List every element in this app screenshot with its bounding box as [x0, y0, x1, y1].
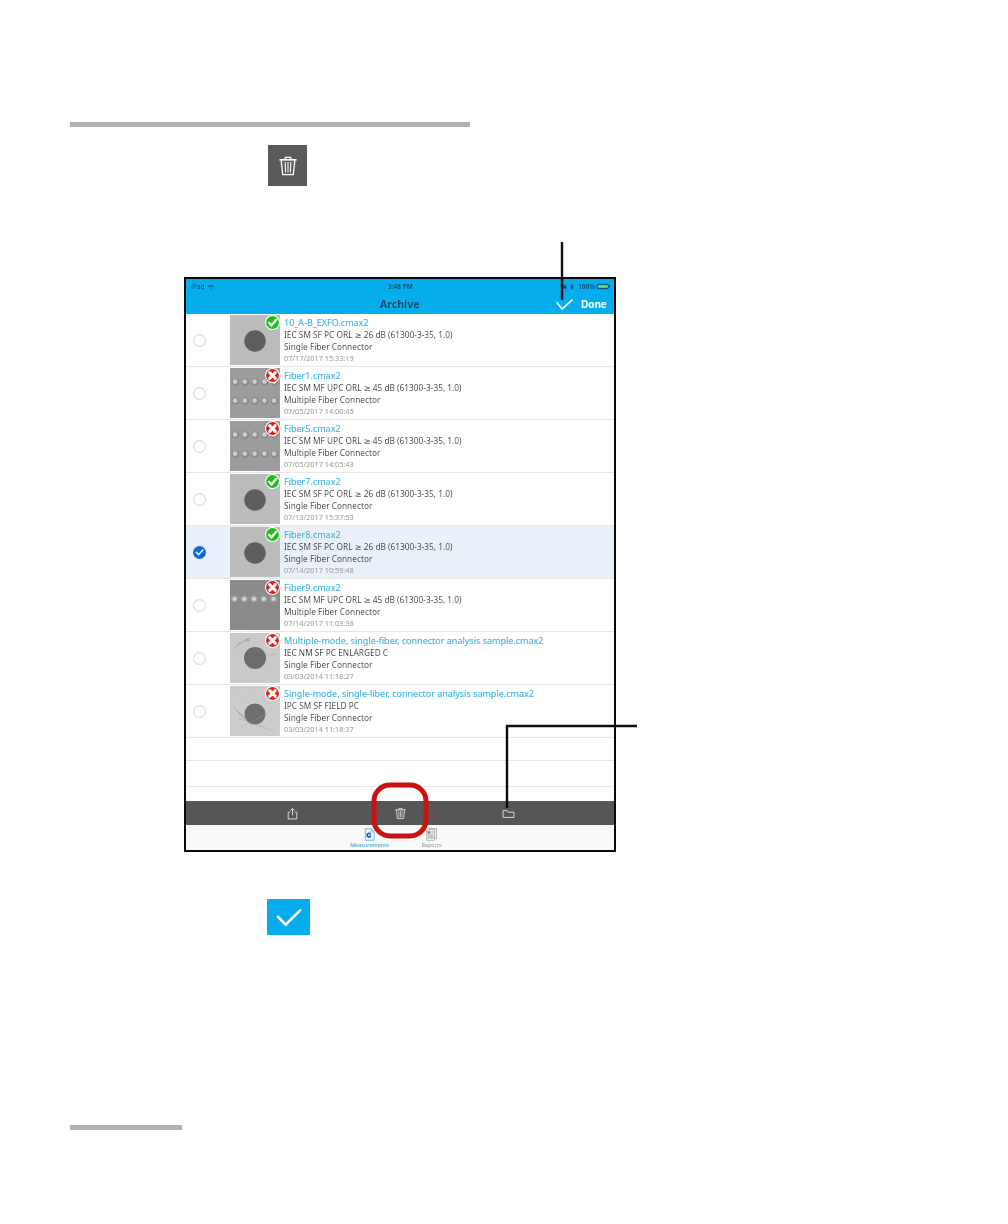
staticText: 07/14/2017 11:03:36: [284, 618, 354, 628]
staticText: 07/13/2017 15:37:53: [284, 512, 354, 522]
staticText: Multiple Fiber Connector: [284, 394, 381, 405]
button[interactable]: Delete: [385, 801, 415, 825]
staticText: IEC SM SF PC ORL ≥ 26 dB (61300-3-35, 1.…: [284, 329, 453, 340]
staticText: Single Fiber Connector: [284, 712, 373, 723]
staticText: Fiber1.cmax2: [284, 369, 341, 381]
staticText: Fiber5.cmax2: [284, 422, 341, 434]
button[interactable]: Fiber7.cmax2: [186, 473, 614, 525]
staticText: Multiple Fiber Connector: [284, 447, 381, 458]
staticText: iPad: [191, 282, 205, 291]
button[interactable]: Done: [579, 295, 609, 313]
button[interactable]: Measurements: [338, 827, 400, 848]
staticText: Fiber7.cmax2: [284, 475, 341, 487]
button[interactable]: Reports: [400, 827, 462, 848]
staticText: Archive: [380, 297, 420, 311]
staticText: Single Fiber Connector: [284, 553, 373, 564]
staticText: IEC SM SF PC ORL ≥ 26 dB (61300-3-35, 1.…: [284, 488, 453, 499]
staticText: IEC SM SF PC ORL ≥ 26 dB (61300-3-35, 1.…: [284, 541, 453, 552]
staticText: Done: [581, 297, 607, 311]
staticText: 07/05/2017 14:00:45: [284, 406, 354, 416]
staticText: IEC SM MF UPC ORL ≥ 45 dB (61300-3-35, 1…: [284, 382, 462, 393]
staticText: 3:48 PM: [388, 282, 413, 291]
staticText: 100%: [578, 282, 596, 291]
staticText: 03/03/2014 11:18:27: [284, 671, 354, 681]
staticText: Fiber8.cmax2: [284, 528, 341, 540]
button[interactable]: 10_A-B_EXFO.cmax2: [186, 314, 614, 366]
staticText: Multiple-mode, single-fiber, connector a…: [284, 634, 544, 646]
staticText: Measurements: [350, 841, 389, 848]
staticText: Reports: [421, 841, 442, 848]
button[interactable]: Fiber5.cmax2: [186, 420, 614, 472]
button[interactable]: Select all: [554, 295, 574, 313]
button[interactable]: Share: [277, 801, 307, 825]
button[interactable]: Confirm: [267, 899, 310, 935]
staticText: 07/05/2017 14:05:43: [284, 459, 354, 469]
staticText: IEC NM SF PC ENLARGED C: [284, 647, 389, 658]
staticText: IEC SM MF UPC ORL ≥ 45 dB (61300-3-35, 1…: [284, 594, 462, 605]
staticText: Single-mode, single-liber, connector ana…: [284, 687, 534, 699]
button[interactable]: Delete: [268, 145, 307, 186]
staticText: Single Fiber Connector: [284, 659, 373, 670]
staticText: 07/14/2017 10:59:48: [284, 565, 354, 575]
button[interactable]: Fiber8.cmax2: [186, 526, 614, 578]
staticText: Multiple Fiber Connector: [284, 606, 381, 617]
staticText: 10_A-B_EXFO.cmax2: [284, 316, 369, 328]
staticText: Single Fiber Connector: [284, 341, 373, 352]
button[interactable]: Single-mode, single-liber, connector ana…: [186, 685, 614, 737]
staticText: Fiber9.cmax2: [284, 581, 341, 593]
staticText: 03/03/2014 11:18:37: [284, 724, 354, 734]
staticText: IPC SM SF FIELD PC: [284, 700, 360, 711]
button[interactable]: Fiber1.cmax2: [186, 367, 614, 419]
staticText: 07/17/2017 15:33:19: [284, 353, 354, 363]
staticText: IEC SM MF UPC ORL ≥ 45 dB (61300-3-35, 1…: [284, 435, 462, 446]
staticText: Single Fiber Connector: [284, 500, 373, 511]
button[interactable]: Fiber9.cmax2: [186, 579, 614, 631]
button[interactable]: Move to folder: [493, 801, 523, 825]
button[interactable]: Multiple-mode, single-fiber, connector a…: [186, 632, 614, 684]
